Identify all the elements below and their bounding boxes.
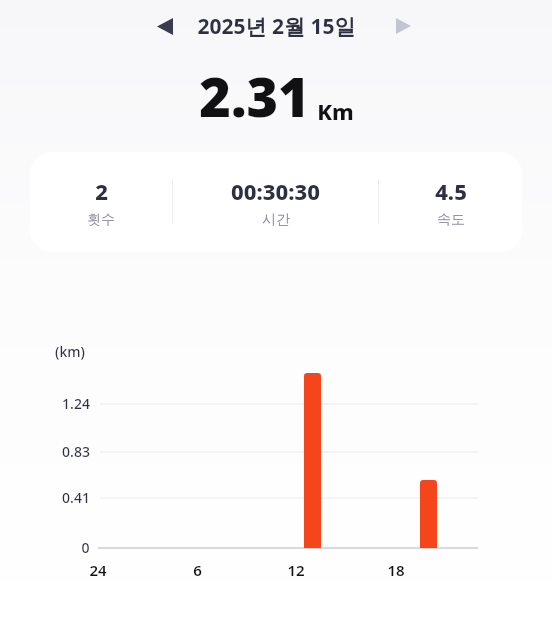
button[interactable]: 2025년 2월 15일: [191, 10, 362, 43]
staticText: 12: [287, 560, 305, 580]
staticText: 횟수: [87, 211, 115, 229]
staticText: 2: [95, 176, 108, 206]
staticText: 18: [387, 560, 405, 580]
staticText: 속도: [437, 211, 465, 229]
staticText: 0.83: [62, 442, 90, 461]
button[interactable]: Next day: [387, 10, 419, 42]
button[interactable]: Previous day: [149, 10, 181, 42]
staticText: 4.5: [435, 176, 467, 206]
staticText: 0: [81, 538, 90, 557]
staticText: 6: [193, 560, 202, 580]
staticText: 24: [89, 560, 107, 580]
staticText: Km: [317, 96, 354, 126]
staticText: (km): [55, 342, 85, 361]
staticText: 2025년 2월 15일: [197, 12, 356, 41]
staticText: 0.41: [62, 488, 90, 507]
staticText: 2.31: [199, 59, 310, 133]
staticText: 00:30:30: [231, 176, 320, 206]
button[interactable]: 2: [30, 152, 522, 252]
staticText: 1.24: [62, 394, 90, 413]
staticText: 시간: [262, 211, 290, 229]
